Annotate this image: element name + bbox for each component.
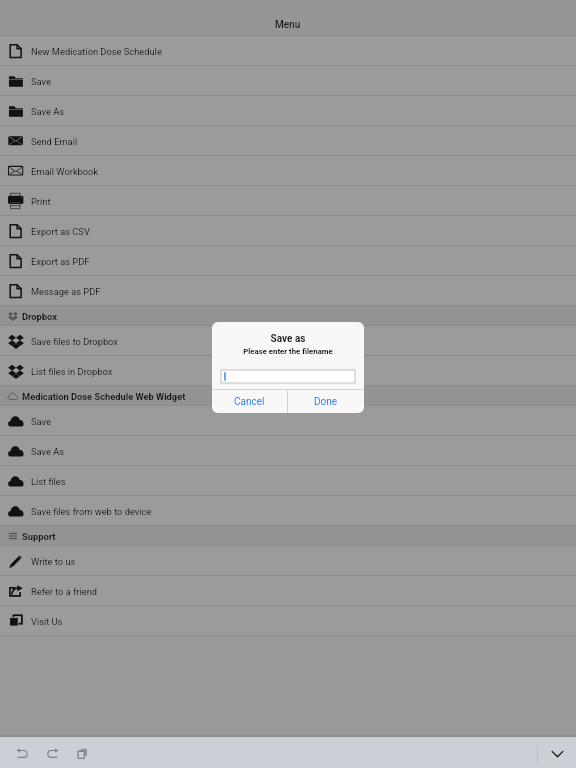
staticText: Visit Us xyxy=(31,616,63,627)
staticText: Save As xyxy=(31,446,65,457)
staticText: Please enter the filename xyxy=(212,347,364,356)
button[interactable]: Dropbox xyxy=(0,306,576,326)
staticText: List files xyxy=(31,476,66,487)
staticText: List files in Dropbox xyxy=(31,366,113,377)
button[interactable]: Refer to a friend xyxy=(0,576,576,606)
button[interactable]: Send Email xyxy=(0,126,576,156)
staticText: Done xyxy=(314,396,338,408)
button[interactable]: Undo xyxy=(7,737,37,768)
button[interactable]: List files in Dropbox xyxy=(0,356,576,386)
staticText: New Medication Dose Schedule xyxy=(31,46,162,57)
staticText: Send Email xyxy=(31,136,78,147)
button[interactable]: Done xyxy=(288,390,364,413)
button[interactable]: Email Workbook xyxy=(0,156,576,186)
button[interactable]: New Medication Dose Schedule xyxy=(0,36,576,66)
button[interactable]: Print xyxy=(0,186,576,216)
staticText: Menu xyxy=(275,19,301,31)
staticText: Save as xyxy=(212,333,364,345)
staticText: Support xyxy=(22,531,56,542)
staticText: Export as CSV xyxy=(31,226,90,237)
staticText: Save xyxy=(31,76,51,87)
button[interactable]: Medication Dose Schedule Web Widget xyxy=(0,386,576,406)
button[interactable]: Export as PDF xyxy=(0,246,576,276)
button[interactable]: Save xyxy=(0,66,576,96)
button[interactable]: Redo xyxy=(37,737,67,768)
button[interactable]: Hide keyboard xyxy=(538,737,576,768)
staticText: Save files from web to device xyxy=(31,506,152,517)
staticText: Medication Dose Schedule Web Widget xyxy=(22,391,186,402)
staticText: Refer to a friend xyxy=(31,586,98,597)
button[interactable]: Cancel xyxy=(212,390,287,413)
staticText: Dropbox xyxy=(22,311,57,322)
staticText: Print xyxy=(31,196,51,207)
staticText: Email Workbook xyxy=(31,166,99,177)
staticText: Cancel xyxy=(234,396,265,408)
button[interactable]: Save As xyxy=(0,96,576,126)
button[interactable]: Save As xyxy=(0,436,576,466)
button[interactable]: Visit Us xyxy=(0,606,576,636)
button[interactable]: Save files from web to device xyxy=(0,496,576,526)
staticText: Save As xyxy=(31,106,65,117)
staticText: Message as PDF xyxy=(31,286,101,297)
button[interactable]: Message as PDF xyxy=(0,276,576,306)
button[interactable]: Filename field xyxy=(221,370,355,383)
button[interactable]: Export as CSV xyxy=(0,216,576,246)
button[interactable]: Support xyxy=(0,526,576,546)
button[interactable]: Save xyxy=(0,406,576,436)
staticText: Save xyxy=(31,416,51,427)
button[interactable]: List files xyxy=(0,466,576,496)
staticText: Write to us xyxy=(31,556,76,567)
button[interactable]: Write to us xyxy=(0,546,576,576)
button[interactable]: Copy xyxy=(67,737,97,768)
staticText: Save files to Dropbox xyxy=(31,336,118,347)
button[interactable]: Save files to Dropbox xyxy=(0,326,576,356)
staticText: Export as PDF xyxy=(31,256,90,267)
